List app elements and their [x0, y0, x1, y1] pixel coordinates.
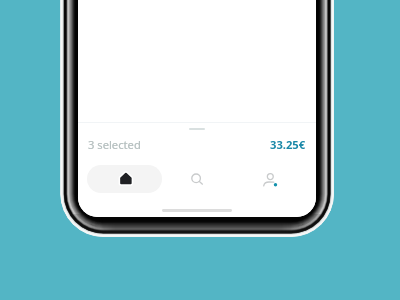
button[interactable]: Home — [87, 165, 162, 193]
button[interactable]: Search — [182, 165, 210, 193]
staticText: 3 selected — [88, 137, 141, 151]
staticText: 33.25€ — [270, 137, 306, 151]
button[interactable]: Profile — [256, 165, 284, 193]
